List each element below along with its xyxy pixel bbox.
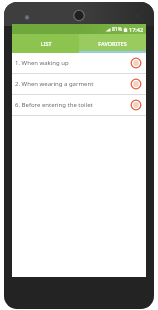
button[interactable]: Toggle favorite bbox=[130, 78, 142, 90]
button[interactable]: Toggle favorite bbox=[130, 57, 142, 69]
button[interactable]: Toggle favorite bbox=[130, 99, 142, 111]
staticText: 17:42 bbox=[129, 26, 144, 33]
staticText: 81% bbox=[112, 26, 122, 33]
button[interactable]: FAVORITES bbox=[79, 34, 146, 53]
staticText: LIST bbox=[40, 40, 52, 47]
staticText: FAVORITES bbox=[98, 40, 127, 47]
staticText: 6. Before entering the toilet bbox=[15, 101, 130, 109]
button[interactable]: LIST bbox=[12, 34, 79, 53]
button[interactable]: 1. When waking up bbox=[12, 53, 146, 73]
staticText: 1. When waking up bbox=[15, 59, 130, 67]
button[interactable]: 6. Before entering the toilet bbox=[12, 95, 146, 115]
staticText: 2. When wearing a garment bbox=[15, 80, 130, 88]
button[interactable]: 2. When wearing a garment bbox=[12, 74, 146, 94]
